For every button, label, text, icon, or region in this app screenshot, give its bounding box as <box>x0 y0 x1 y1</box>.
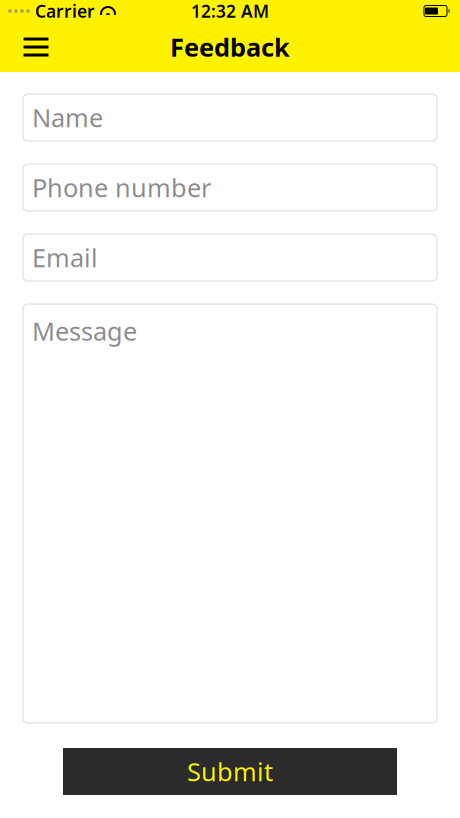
button[interactable]: Menu <box>12 22 60 72</box>
staticText: Message <box>32 314 137 348</box>
staticText: Phone number <box>32 171 211 204</box>
staticText: 12:32 AM <box>191 0 269 22</box>
staticText: Feedback <box>170 30 290 64</box>
staticText: Email <box>32 241 98 274</box>
staticText: Carrier <box>35 0 95 22</box>
staticText: Submit <box>187 755 273 788</box>
button[interactable]: Submit <box>63 748 397 795</box>
staticText: Name <box>32 101 103 134</box>
